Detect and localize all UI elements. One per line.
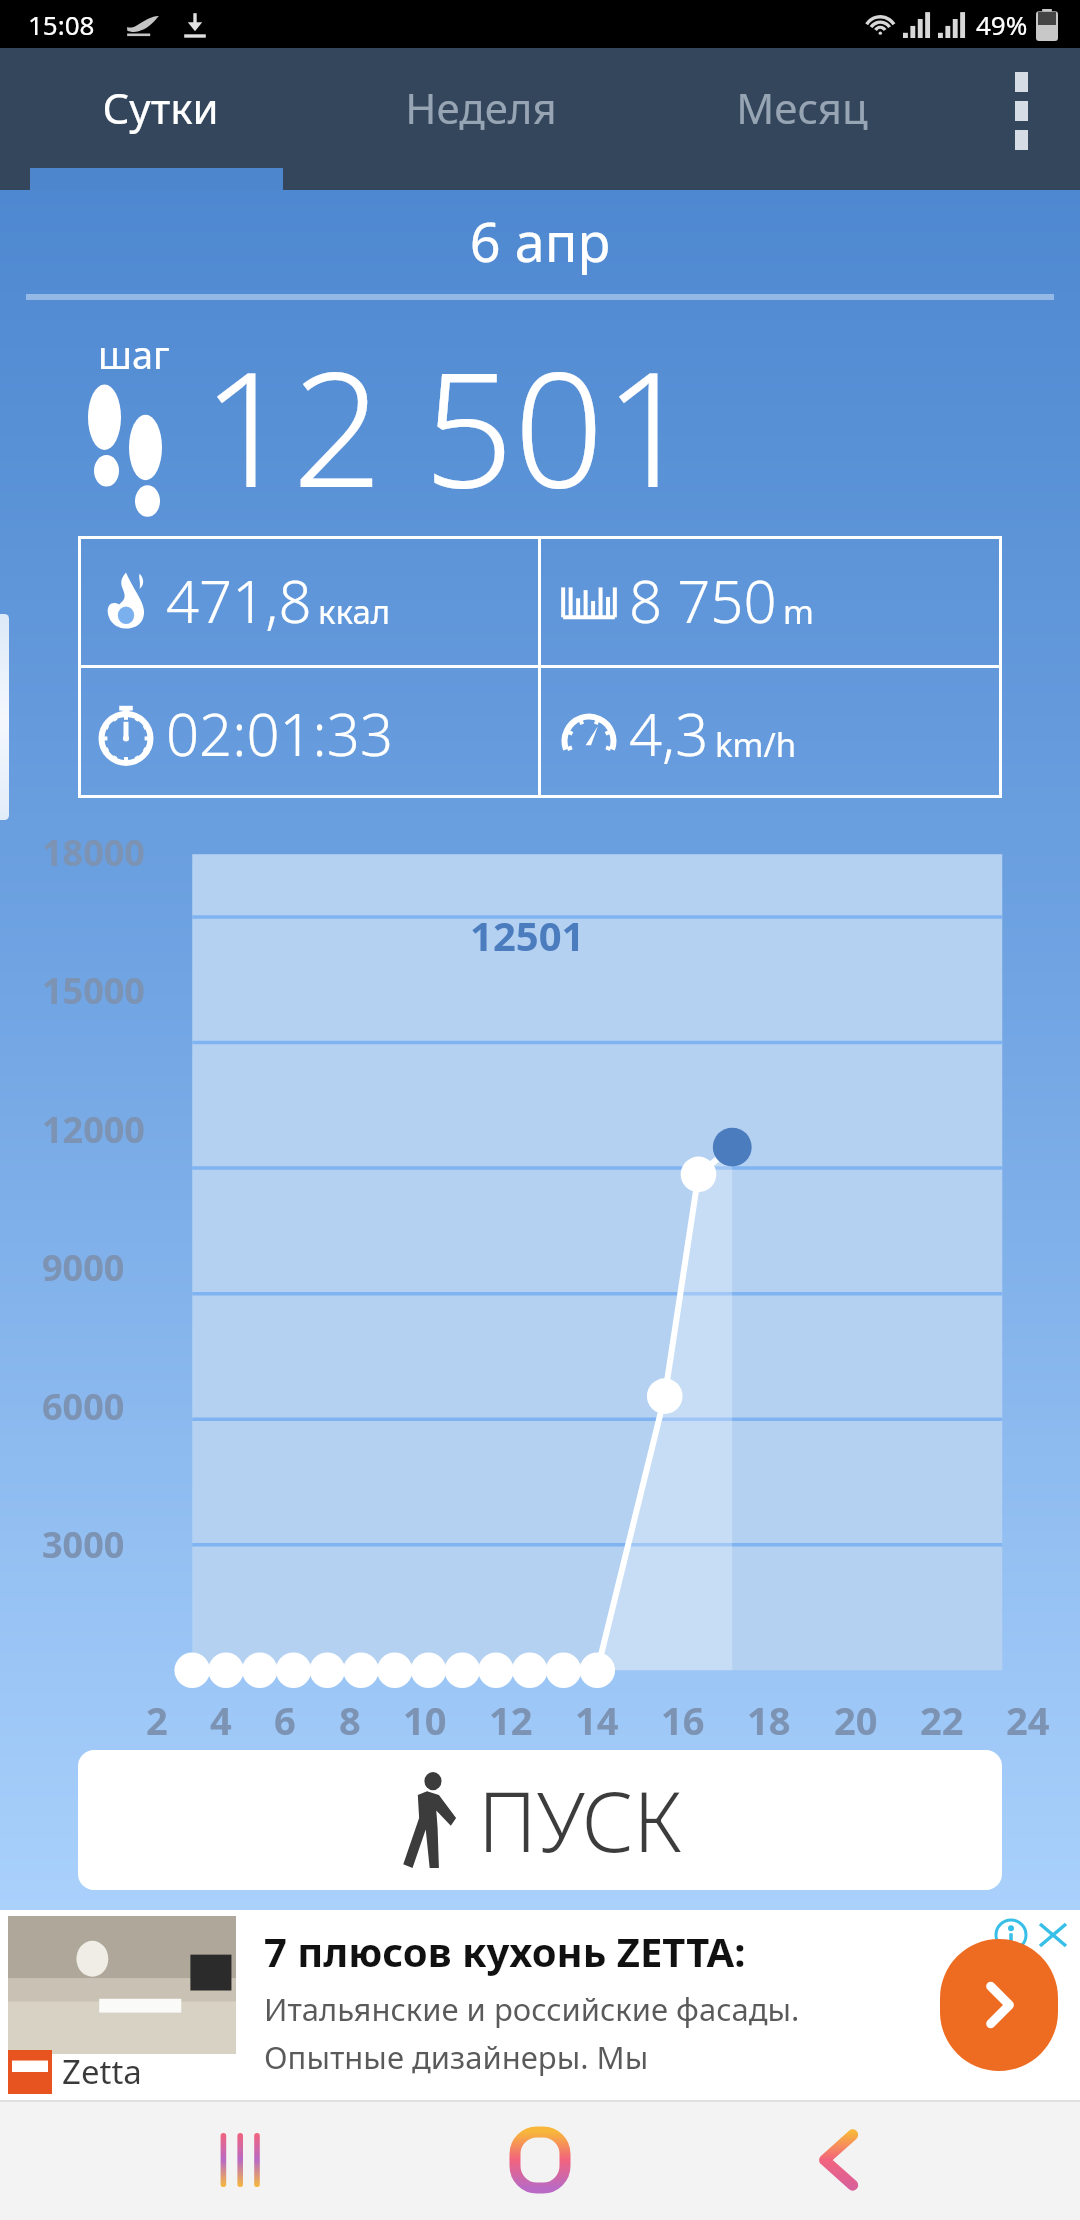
staticText: 24	[1006, 1694, 1050, 1746]
staticText: 12	[489, 1694, 533, 1746]
staticText: 4,3	[629, 694, 709, 773]
staticText: 6	[274, 1694, 296, 1746]
button[interactable]: 8 750	[541, 536, 1002, 665]
staticText: 10	[403, 1694, 447, 1746]
staticText: 14	[575, 1694, 619, 1746]
button[interactable]: More options	[962, 48, 1080, 190]
button[interactable]: Close ad	[1036, 1918, 1070, 1952]
staticText: 2	[146, 1694, 168, 1746]
button[interactable]: Месяц	[641, 48, 962, 190]
button[interactable]: 7 плюсов кухонь ZETTA:	[0, 1910, 1080, 2100]
staticText: шаг	[98, 328, 170, 380]
staticText: 8	[339, 1694, 361, 1746]
staticText: ккал	[318, 589, 391, 634]
button[interactable]: Open ad	[940, 1939, 1058, 2071]
staticText: 6000	[42, 1382, 125, 1431]
staticText: 12000	[42, 1105, 145, 1154]
button[interactable]: Неделя	[320, 48, 641, 190]
staticText: 18000	[42, 828, 145, 877]
staticText: 9000	[42, 1243, 125, 1292]
staticText: 18	[747, 1694, 791, 1746]
staticText: km/h	[715, 722, 797, 767]
staticText: Месяц	[736, 79, 868, 136]
staticText: 7 плюсов кухонь ZETTA:	[264, 1924, 746, 1978]
staticText: 20	[834, 1694, 878, 1746]
staticText: Zetta	[62, 2049, 142, 2094]
button[interactable]: 471,8	[78, 536, 538, 665]
staticText: 15:08	[28, 7, 95, 42]
staticText: 22	[920, 1694, 964, 1746]
staticText: 16	[661, 1694, 705, 1746]
staticText: 15000	[42, 966, 145, 1015]
staticText: Итальянские и российские фасады.	[264, 1988, 800, 2030]
staticText: 4	[210, 1694, 232, 1746]
staticText: Опытные дизайнеры. Мы	[264, 2036, 649, 2078]
staticText: ПУСК	[478, 1764, 682, 1876]
staticText: 6 апр	[0, 204, 1080, 278]
button[interactable]: 02:01:33	[78, 668, 538, 798]
staticText: 8 750	[629, 561, 777, 640]
button[interactable]: Back	[783, 2105, 893, 2215]
button[interactable]: Home	[485, 2105, 595, 2215]
staticText: 49%	[976, 7, 1028, 42]
button[interactable]: Сутки	[0, 48, 320, 190]
staticText: m	[783, 589, 814, 634]
button[interactable]: 4,3	[541, 668, 1002, 798]
staticText: 02:01:33	[166, 694, 394, 773]
staticText: 12 501	[202, 318, 695, 518]
staticText: Сутки	[102, 79, 219, 136]
staticText: 12501	[470, 908, 585, 962]
staticText: 471,8	[166, 561, 312, 640]
button[interactable]: Recent apps	[188, 2105, 298, 2215]
staticText: Неделя	[405, 79, 557, 136]
button[interactable]: ПУСК	[78, 1750, 1002, 1890]
staticText: 3000	[42, 1520, 125, 1569]
other: Ad info	[994, 1918, 1028, 1952]
